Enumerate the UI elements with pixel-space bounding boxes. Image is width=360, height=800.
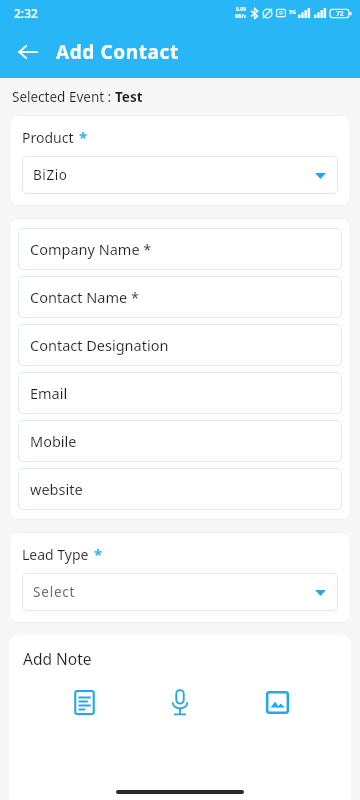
button[interactable]: Contact Designation bbox=[18, 324, 342, 366]
staticText: Contact Designation bbox=[30, 335, 169, 355]
staticText: Add Contact bbox=[56, 39, 179, 65]
staticText: Email bbox=[30, 383, 68, 403]
staticText: 0.09 bbox=[236, 6, 246, 13]
staticText: 72 bbox=[336, 9, 344, 18]
staticText: Selected Event : bbox=[12, 88, 115, 106]
staticText: * bbox=[79, 127, 88, 147]
button[interactable]: Contact Name * bbox=[18, 276, 342, 318]
staticText: website bbox=[30, 479, 83, 499]
staticText: Product bbox=[22, 128, 74, 147]
staticText: 5G bbox=[289, 8, 297, 15]
button[interactable]: Company Name * bbox=[18, 228, 342, 270]
button[interactable]: Email bbox=[18, 372, 342, 414]
button[interactable]: BiZio bbox=[22, 156, 338, 194]
staticText: Company Name * bbox=[30, 239, 152, 259]
button[interactable]: website bbox=[18, 468, 342, 510]
staticText: Lead Type bbox=[22, 545, 89, 564]
button[interactable]: Back bbox=[8, 32, 48, 72]
staticText: Mobile bbox=[30, 431, 77, 451]
staticText: Test bbox=[115, 88, 143, 106]
staticText: Contact Name * bbox=[30, 287, 139, 307]
button[interactable]: Add image bbox=[255, 680, 299, 724]
staticText: KB/s bbox=[235, 13, 247, 20]
staticText: * bbox=[94, 544, 103, 564]
staticText: Add Note bbox=[23, 648, 92, 669]
button[interactable]: Select bbox=[22, 573, 338, 611]
staticText: BiZio bbox=[33, 166, 68, 184]
button[interactable]: Voice note bbox=[158, 680, 202, 724]
staticText: Select bbox=[33, 583, 76, 601]
staticText: 2:32 bbox=[14, 5, 38, 21]
button[interactable]: Text note bbox=[62, 680, 106, 724]
button[interactable]: Mobile bbox=[18, 420, 342, 462]
